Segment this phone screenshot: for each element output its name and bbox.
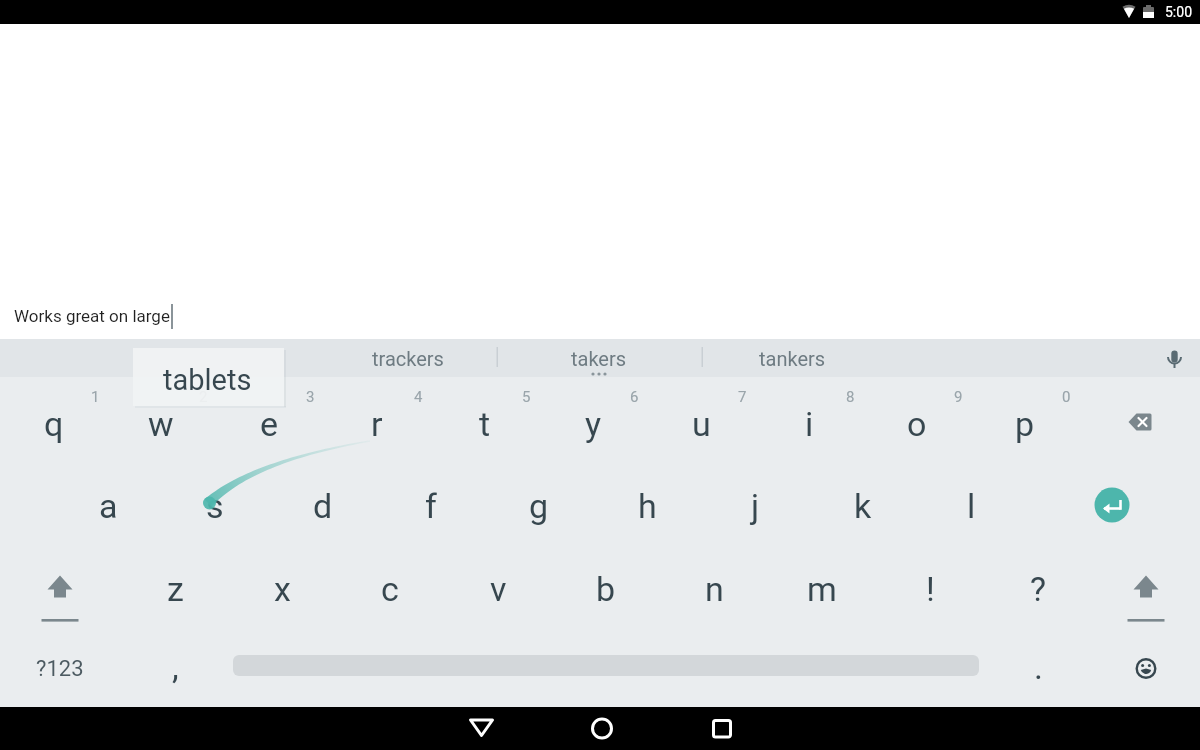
button[interactable]: ,	[121, 627, 229, 707]
button[interactable]	[451, 707, 511, 750]
staticText: 9	[954, 388, 963, 406]
button[interactable]: !	[876, 549, 984, 629]
button[interactable]: trackers	[318, 339, 498, 377]
staticText: n	[705, 569, 724, 609]
staticText: b	[596, 569, 616, 609]
staticText: j	[751, 486, 760, 526]
staticText: a	[99, 486, 118, 526]
button[interactable]	[692, 707, 752, 750]
staticText: q	[44, 404, 64, 444]
staticText: h	[638, 486, 657, 526]
staticText: Works great on large	[14, 306, 170, 326]
staticText: tankers	[759, 347, 826, 370]
button[interactable]: tankers	[702, 339, 882, 377]
button[interactable]: ?	[984, 549, 1092, 629]
staticText: 4	[414, 388, 423, 406]
button[interactable]: q	[0, 384, 108, 464]
button[interactable]: g	[485, 466, 593, 546]
staticText: ?	[1030, 569, 1047, 609]
button[interactable]: i	[755, 384, 863, 464]
button[interactable]	[1155, 339, 1193, 377]
button[interactable]: d	[269, 466, 377, 546]
staticText: z	[167, 569, 184, 609]
button[interactable]: x	[228, 549, 336, 629]
button[interactable]: u	[647, 384, 755, 464]
button[interactable]: m	[768, 549, 876, 629]
staticText: tablets	[163, 363, 252, 397]
button[interactable]: j	[701, 466, 809, 546]
button[interactable]	[1092, 547, 1200, 629]
staticText: c	[381, 569, 399, 609]
button[interactable]: ?123	[5, 629, 115, 709]
staticText: trackers	[372, 347, 444, 370]
staticText: f	[425, 486, 437, 526]
staticText: g	[529, 486, 549, 526]
staticText: ?123	[36, 656, 84, 682]
button[interactable]: f	[377, 466, 485, 546]
staticText: d	[313, 486, 333, 526]
button[interactable]: h	[593, 466, 701, 546]
staticText: x	[274, 569, 291, 609]
button[interactable]	[1058, 465, 1166, 547]
button[interactable]	[0, 547, 120, 629]
button[interactable]: y	[539, 384, 647, 464]
button[interactable]: w	[107, 384, 215, 464]
staticText: r	[371, 404, 383, 444]
staticText: t	[479, 404, 491, 444]
staticText: !	[926, 569, 935, 609]
staticText: ,	[172, 647, 179, 687]
staticText: 1	[91, 388, 100, 406]
staticText: y	[585, 404, 602, 444]
staticText: k	[854, 486, 872, 526]
staticText: 6	[630, 388, 639, 406]
staticText: 0	[1062, 388, 1071, 406]
button[interactable]	[133, 348, 284, 406]
button[interactable]: v	[444, 549, 552, 629]
staticText: takers	[571, 347, 627, 370]
button[interactable]: n	[660, 549, 768, 629]
button[interactable]: e	[215, 384, 323, 464]
button[interactable]	[1092, 629, 1200, 707]
button[interactable]	[572, 707, 632, 750]
button[interactable]	[1086, 383, 1200, 465]
staticText: v	[490, 569, 507, 609]
staticText: p	[1015, 404, 1035, 444]
button[interactable]: takers	[509, 339, 689, 377]
staticText: 8	[846, 388, 855, 406]
staticText: w	[148, 404, 174, 444]
staticText: u	[692, 404, 711, 444]
button[interactable]: t	[431, 384, 539, 464]
staticText: e	[260, 404, 279, 444]
staticText: 7	[738, 388, 747, 406]
staticText: 5	[522, 388, 531, 406]
button[interactable]: r	[323, 384, 431, 464]
button[interactable]: l	[917, 466, 1025, 546]
staticText: m	[807, 569, 837, 609]
button[interactable]: b	[552, 549, 660, 629]
staticText: s	[206, 486, 224, 526]
button[interactable]: .	[984, 627, 1092, 707]
button[interactable]: z	[121, 549, 229, 629]
staticText: 5:00	[1165, 4, 1192, 20]
staticText: o	[907, 404, 927, 444]
staticText: l	[967, 486, 976, 526]
button[interactable]: c	[336, 549, 444, 629]
button[interactable]: k	[809, 466, 917, 546]
button[interactable]: o	[863, 384, 971, 464]
button[interactable]: a	[54, 466, 162, 546]
staticText: i	[805, 404, 814, 444]
button[interactable]: s	[161, 466, 269, 546]
button[interactable]	[233, 629, 979, 707]
staticText: .	[1034, 647, 1043, 687]
staticText: 3	[306, 388, 315, 406]
staticText: 2	[199, 388, 208, 406]
button[interactable]: p	[971, 384, 1079, 464]
